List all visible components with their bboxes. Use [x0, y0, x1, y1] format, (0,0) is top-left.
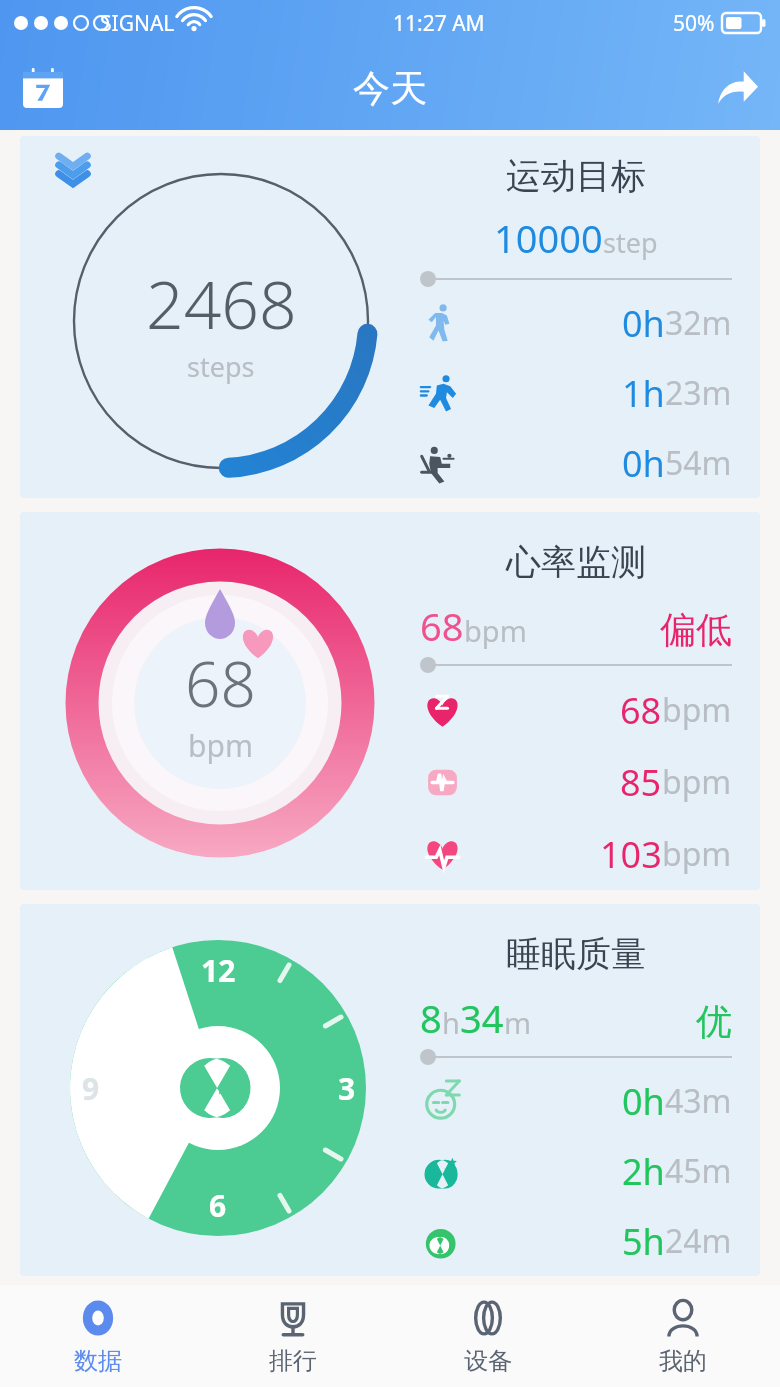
- staticText: 0h: [622, 1077, 665, 1126]
- staticText: 68: [420, 600, 464, 652]
- staticText: 103: [600, 830, 662, 879]
- staticText: 3: [338, 1068, 356, 1109]
- staticText: 0h: [622, 299, 665, 348]
- staticText: bpm: [662, 832, 732, 876]
- staticText: 我的: [659, 1346, 707, 1376]
- staticText: bpm: [662, 760, 732, 804]
- button[interactable]: 排行: [195, 1285, 390, 1387]
- button[interactable]: Expand: [56, 150, 90, 184]
- staticText: 今天: [72, 65, 708, 112]
- button[interactable]: Expand: [20, 136, 760, 498]
- staticText: 10000: [494, 212, 603, 264]
- staticText: 设备: [464, 1346, 512, 1376]
- staticText: 54m: [665, 441, 732, 485]
- staticText: bpm: [662, 688, 732, 732]
- staticText: 23m: [665, 371, 732, 415]
- button[interactable]: 68: [20, 512, 760, 890]
- staticText: steps: [187, 348, 255, 385]
- staticText: 2h: [622, 1147, 665, 1196]
- staticText: 9: [82, 1068, 100, 1109]
- staticText: h: [442, 1003, 460, 1042]
- button[interactable]: Calendar: [14, 59, 72, 117]
- staticText: 睡眠质量: [420, 932, 732, 976]
- staticText: bpm: [464, 611, 527, 650]
- staticText: 数据: [74, 1346, 122, 1376]
- staticText: 43m: [665, 1079, 732, 1123]
- staticText: 68: [185, 641, 256, 725]
- staticText: 85: [620, 758, 662, 807]
- button[interactable]: 数据: [0, 1285, 195, 1387]
- staticText: 50%: [673, 9, 715, 38]
- staticText: step: [603, 224, 658, 261]
- staticText: 2468: [146, 258, 297, 348]
- staticText: 24m: [665, 1219, 732, 1263]
- staticText: 心率监测: [420, 540, 732, 584]
- staticText: SIGNAL: [100, 9, 175, 38]
- button[interactable]: 12: [20, 904, 760, 1276]
- staticText: 1h: [622, 369, 665, 418]
- staticText: 68: [620, 686, 662, 735]
- staticText: 6: [209, 1185, 227, 1226]
- button[interactable]: 设备: [390, 1285, 585, 1387]
- staticText: 8: [420, 992, 442, 1044]
- staticText: bpm: [188, 725, 253, 766]
- staticText: 运动目标: [420, 154, 732, 198]
- button[interactable]: 我的: [585, 1285, 780, 1387]
- staticText: 32m: [665, 301, 732, 345]
- staticText: 5h: [622, 1217, 665, 1266]
- staticText: 34: [460, 992, 504, 1044]
- staticText: 偏低: [660, 607, 732, 652]
- staticText: 排行: [269, 1346, 317, 1376]
- staticText: 45m: [665, 1149, 732, 1193]
- staticText: 0h: [622, 439, 665, 488]
- staticText: 优: [696, 999, 732, 1044]
- button[interactable]: Share: [708, 59, 766, 117]
- staticText: 12: [201, 950, 236, 991]
- staticText: m: [504, 1003, 532, 1042]
- staticText: 11:27 AM: [393, 9, 485, 38]
